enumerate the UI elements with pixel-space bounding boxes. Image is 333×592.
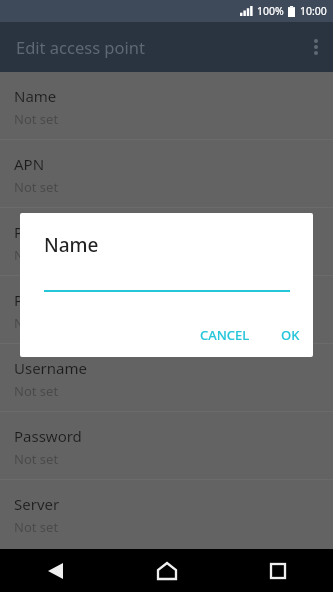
button[interactable]: Name [0, 72, 333, 139]
button[interactable]: Proxy [0, 208, 333, 275]
staticText: Password [14, 426, 82, 446]
staticText: Edit access point [16, 36, 145, 58]
staticText: Not set [14, 382, 59, 400]
staticText: Not set [14, 246, 59, 264]
staticText: CANCEL [200, 326, 250, 344]
staticText: Name [14, 86, 57, 106]
button[interactable]: Port [0, 276, 333, 343]
staticText: Proxy [14, 222, 54, 242]
staticText: Not set [14, 110, 59, 128]
staticText: Name [44, 232, 99, 258]
button[interactable]: Server [0, 480, 333, 547]
staticText: Not set [14, 518, 59, 536]
staticText: 10:00 [300, 4, 327, 18]
staticText: Not set [14, 450, 59, 468]
button[interactable]: CANCEL [192, 321, 258, 349]
button[interactable]: Home [111, 549, 222, 592]
button[interactable]: APN [0, 140, 333, 207]
staticText: Username [14, 358, 87, 378]
button[interactable]: Recents [222, 549, 333, 592]
button[interactable]: More options [299, 22, 333, 72]
staticText: Not set [14, 178, 59, 196]
button[interactable]: Username [0, 344, 333, 411]
button[interactable]: OK [273, 321, 308, 349]
staticText: OK [281, 326, 300, 344]
staticText: Server [14, 494, 60, 514]
staticText: Not set [14, 314, 59, 332]
staticText: APN [14, 154, 45, 174]
staticText: Port [14, 290, 44, 310]
button[interactable]: Back [0, 549, 111, 592]
button[interactable]: Password [0, 412, 333, 479]
staticText: 100% [257, 4, 284, 18]
